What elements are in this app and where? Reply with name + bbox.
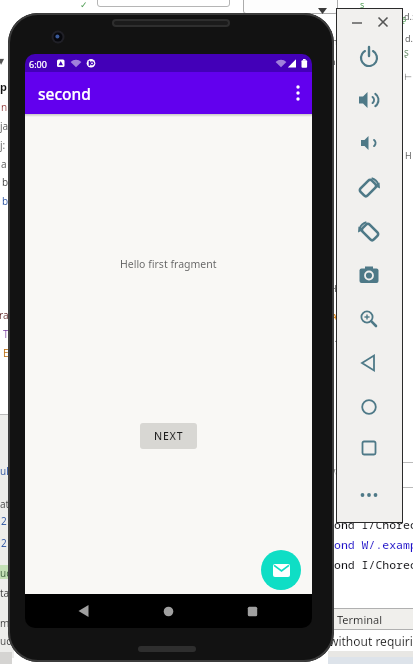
staticText: ja [0,119,9,133]
staticText: at [0,497,10,511]
staticText: uc [0,566,11,580]
button[interactable] [375,14,391,30]
staticText: ond I/Choreo [334,557,413,573]
staticText: d.: [404,10,413,22]
staticText: 6:00 [29,58,47,70]
button[interactable] [355,129,383,157]
staticText: A [331,310,338,322]
staticText: ✓ [80,0,88,10]
staticText: .. [332,332,337,344]
staticText: 2 [1,536,7,550]
staticText: Hello first fragment [120,257,217,271]
button[interactable] [161,604,176,619]
staticText: ʂ [404,45,409,59]
staticText: ond I/Choreo [334,517,413,533]
button[interactable] [288,83,308,103]
staticText: second [38,83,91,104]
staticText: T [3,327,9,341]
staticText: ta [0,586,10,600]
button[interactable] [355,434,383,462]
staticText: Terminal [337,612,383,627]
staticText: m [0,616,10,630]
staticText: H [330,282,337,294]
button[interactable] [77,604,92,619]
staticText: s [360,0,365,10]
staticText: NEXT [154,429,184,443]
staticText: m [329,35,338,47]
staticText: ▼ [0,57,5,66]
button[interactable] [355,481,383,509]
staticText: 2 [1,514,7,528]
button[interactable] [261,550,301,590]
staticText: Ve [330,466,341,478]
button[interactable] [355,393,383,421]
button[interactable] [355,305,383,333]
staticText: E [3,346,9,360]
button[interactable] [349,14,365,30]
staticText: ʂ [402,12,407,24]
staticText: d. [405,32,413,44]
button[interactable]: NEXT [140,423,197,449]
staticText: H [405,149,412,161]
button[interactable] [245,604,260,619]
staticText: n [1,100,8,114]
staticText: without requiri [329,633,413,649]
staticText: p [0,79,7,94]
button[interactable] [355,43,383,71]
button[interactable] [355,173,383,201]
staticText: b [2,175,9,189]
staticText: ra [0,308,9,322]
button[interactable] [355,86,383,114]
staticText: b [2,194,9,208]
staticText: j: [0,138,6,152]
button[interactable] [355,349,383,377]
button[interactable] [355,261,383,289]
staticText: ul [0,464,9,478]
staticText: ⊢ [404,72,412,82]
staticText: a [1,157,7,171]
staticText: ond W/.examp [334,537,413,553]
staticText: n [330,55,336,67]
staticText: uc [0,634,11,648]
button[interactable] [355,217,383,245]
